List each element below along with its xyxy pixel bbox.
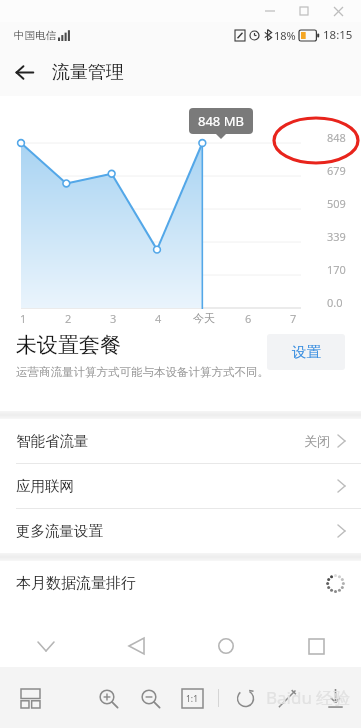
button[interactable]: Zoom in	[92, 682, 124, 714]
staticText: 2	[65, 311, 72, 326]
button[interactable]: 本月数据流量排行	[0, 561, 361, 605]
staticText: 18:15	[323, 27, 353, 43]
staticText: 339	[327, 229, 346, 244]
button[interactable]: 智能省流量	[0, 419, 361, 463]
staticText: 智能省流量	[16, 432, 89, 450]
button[interactable]: Back	[91, 625, 181, 667]
button[interactable]: Hide	[0, 625, 91, 667]
button[interactable]: Home	[181, 625, 271, 667]
button[interactable]: Back	[0, 48, 48, 96]
staticText: 679	[327, 163, 346, 178]
staticText: 1:1	[186, 693, 199, 705]
staticText: 1	[20, 311, 27, 326]
button[interactable]: Rotate	[229, 682, 261, 714]
staticText: 运营商流量计算方式可能与本设备计算方式不同。	[16, 365, 269, 379]
staticText: 未设置套餐	[16, 332, 121, 358]
staticText: 7	[290, 311, 297, 326]
other: Loading	[326, 574, 345, 593]
button[interactable]: Recents	[271, 625, 361, 667]
staticText: 关闭	[304, 433, 330, 449]
button[interactable]: Download	[319, 682, 351, 714]
button[interactable]: Layout	[14, 682, 46, 714]
staticText: 0.0	[327, 295, 343, 310]
staticText: 4	[155, 311, 162, 326]
staticText: 170	[327, 262, 346, 277]
button[interactable]: Minimize	[253, 1, 287, 21]
staticText: 848	[327, 130, 346, 145]
button[interactable]: 应用联网	[0, 464, 361, 508]
button[interactable]: Actual size	[176, 682, 208, 714]
staticText: 今天	[193, 311, 215, 325]
staticText: 设置	[292, 343, 321, 361]
staticText: 应用联网	[16, 477, 74, 495]
staticText: 中国电信	[14, 29, 56, 42]
staticText: 848 MB	[198, 112, 244, 130]
button[interactable]: 更多流量设置	[0, 509, 361, 553]
button[interactable]: 设置	[267, 334, 345, 370]
button[interactable]: Close	[321, 1, 355, 21]
staticText: Baidu 经验	[266, 686, 351, 709]
button[interactable]: Zoom out	[134, 682, 166, 714]
staticText: 509	[327, 196, 346, 211]
staticText: 18%	[274, 28, 296, 43]
staticText: 3	[110, 311, 117, 326]
staticText: 流量管理	[52, 61, 124, 84]
staticText: 本月数据流量排行	[16, 574, 136, 593]
staticText: 6	[245, 311, 252, 326]
staticText: 更多流量设置	[16, 522, 103, 540]
button[interactable]: Maximize	[287, 1, 321, 21]
button[interactable]: Edit	[271, 682, 303, 714]
